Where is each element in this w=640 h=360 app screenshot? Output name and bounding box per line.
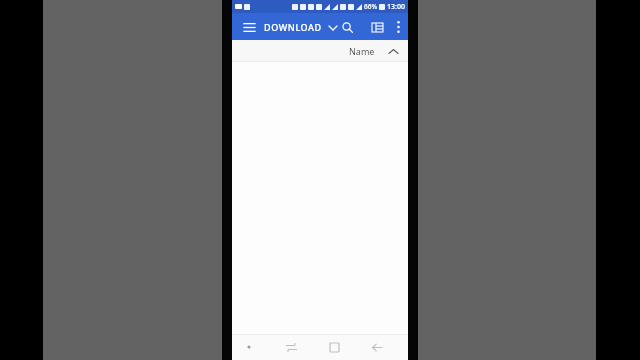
button[interactable]: More options (395, 18, 402, 36)
staticText: Name (349, 45, 375, 57)
button[interactable]: Menu dot (240, 338, 258, 356)
button[interactable]: Recent apps (324, 337, 344, 357)
button[interactable]: Open navigation drawer (240, 18, 258, 36)
staticText: DOWNLOAD (264, 21, 322, 33)
button[interactable]: Name (349, 45, 402, 57)
button[interactable]: DOWNLOAD (264, 21, 337, 33)
staticText: 66% (364, 2, 377, 11)
button[interactable]: Switch view (367, 17, 387, 37)
button[interactable]: Back (367, 337, 387, 357)
staticText: 13:00 (387, 2, 405, 12)
button[interactable]: Search (337, 17, 357, 37)
button[interactable]: Switch apps (281, 337, 301, 357)
